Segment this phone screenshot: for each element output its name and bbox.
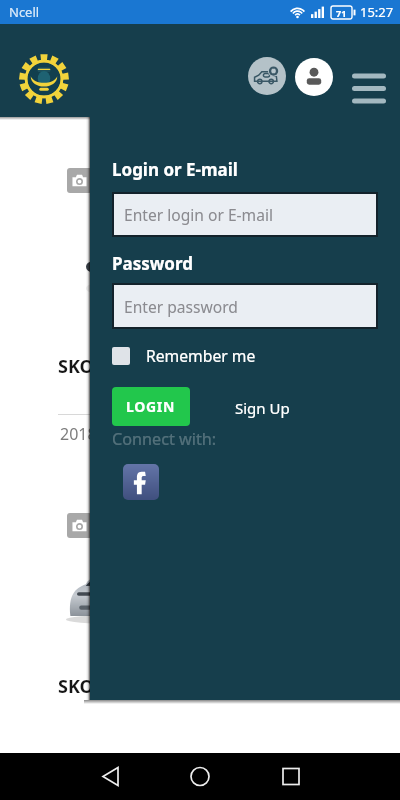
staticText: Ncell — [9, 3, 40, 21]
button[interactable]: LOGIN — [112, 387, 190, 426]
button[interactable]: Profile — [295, 58, 333, 96]
button[interactable]: Enter password — [114, 285, 376, 327]
staticText: 15:27 — [360, 3, 394, 21]
staticText: LOGIN — [126, 397, 176, 416]
staticText: Enter password — [124, 296, 238, 317]
staticText: 2018 — [60, 423, 97, 445]
staticText: Password — [112, 252, 193, 275]
staticText: Login or E-mail — [112, 158, 238, 181]
staticText: 71 — [336, 7, 347, 19]
button[interactable]: Home logo — [19, 54, 69, 104]
button[interactable]: Sign Up — [235, 398, 290, 418]
staticText: Connect with: — [112, 428, 217, 450]
button[interactable]: Connect with Facebook — [123, 464, 159, 500]
staticText: Enter login or E-mail — [124, 204, 273, 225]
button[interactable]: Remember me — [112, 345, 256, 366]
staticText: SKODA OCTAVIA — [58, 674, 202, 699]
button[interactable]: Enter login or E-mail — [114, 194, 376, 235]
button[interactable]: Add car — [248, 57, 286, 95]
button[interactable]: Menu — [344, 64, 392, 112]
staticText: SKODA OCTAVIA — [58, 354, 202, 379]
staticText: Remember me — [146, 345, 256, 366]
